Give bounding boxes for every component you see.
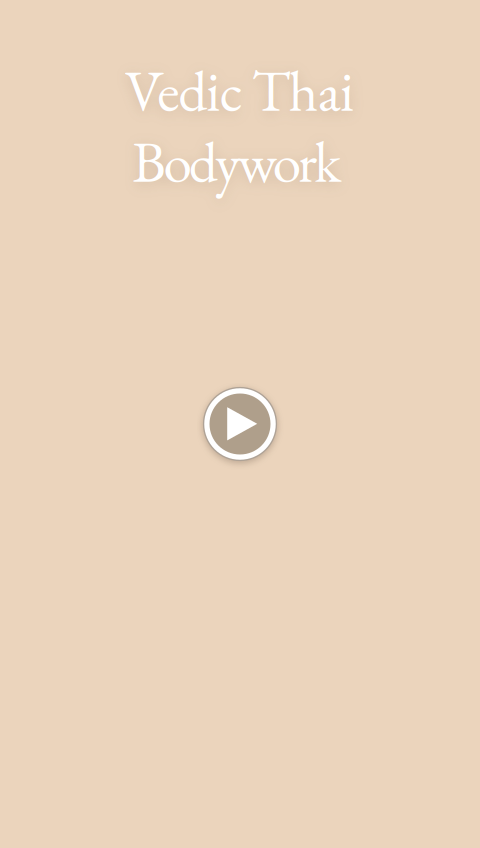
button[interactable]: Play [196, 380, 284, 468]
staticText: Vedic Thai [125, 53, 354, 128]
staticText: Bodywork [132, 124, 341, 199]
